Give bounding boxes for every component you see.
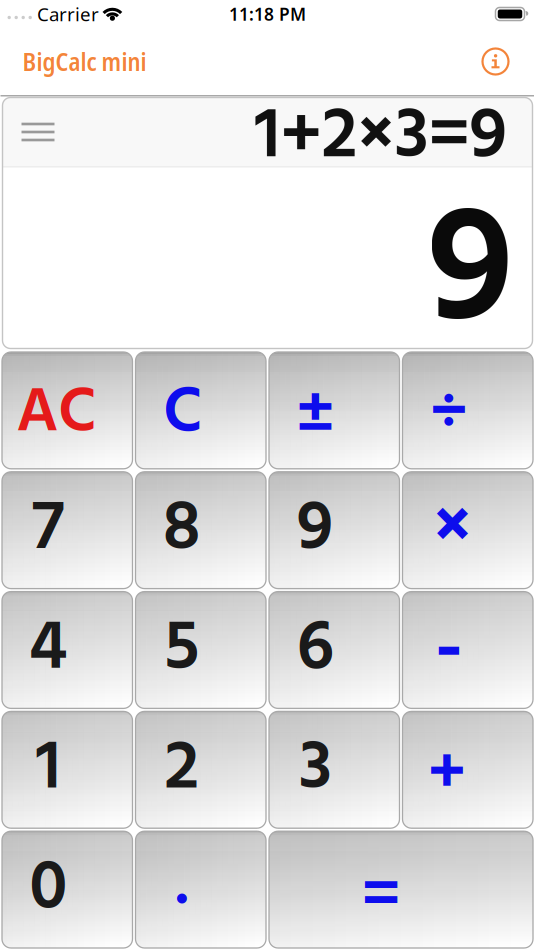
- staticText: .: [175, 835, 189, 938]
- button[interactable]: ÷: [402, 352, 533, 469]
- staticText: +: [428, 722, 466, 829]
- staticText: 11:18 PM: [229, 2, 306, 25]
- staticText: 6: [297, 594, 334, 706]
- staticText: 7: [32, 474, 65, 586]
- button[interactable]: 0: [2, 831, 132, 948]
- staticText: 3: [299, 714, 332, 826]
- button[interactable]: 2: [135, 711, 266, 828]
- button[interactable]: 5: [135, 592, 266, 708]
- staticText: ÷: [430, 361, 468, 468]
- staticText: 2: [164, 714, 199, 826]
- button[interactable]: About: [482, 48, 508, 74]
- staticText: 9: [297, 474, 334, 586]
- button[interactable]: History: [2, 123, 54, 141]
- staticText: Carrier: [37, 2, 99, 26]
- button[interactable]: ×: [402, 472, 533, 589]
- button[interactable]: 3: [269, 711, 399, 828]
- button[interactable]: C: [135, 352, 266, 469]
- staticText: 9: [427, 143, 513, 408]
- staticText: 5: [164, 594, 199, 706]
- staticText: 1+2×3=9: [254, 80, 507, 196]
- button[interactable]: 6: [269, 592, 399, 708]
- button[interactable]: 1: [2, 711, 132, 828]
- button[interactable]: =: [269, 831, 533, 948]
- button[interactable]: AC: [2, 352, 132, 469]
- staticText: ±: [296, 361, 334, 468]
- button[interactable]: .: [135, 831, 266, 948]
- button[interactable]: -: [402, 592, 533, 708]
- button[interactable]: ±: [269, 352, 399, 469]
- button[interactable]: 4: [2, 592, 132, 708]
- staticText: C: [163, 363, 202, 466]
- staticText: =: [361, 843, 400, 950]
- staticText: -: [435, 587, 463, 716]
- button[interactable]: 8: [135, 472, 266, 589]
- staticText: 0: [29, 834, 67, 946]
- staticText: ×: [433, 470, 471, 590]
- staticText: AC: [16, 364, 96, 464]
- button[interactable]: 7: [2, 472, 132, 589]
- button[interactable]: 9: [269, 472, 399, 589]
- button[interactable]: +: [402, 711, 533, 828]
- staticText: 8: [163, 474, 201, 586]
- staticText: BigCalc mini: [22, 45, 146, 78]
- staticText: 1: [36, 714, 61, 826]
- staticText: 4: [29, 594, 68, 706]
